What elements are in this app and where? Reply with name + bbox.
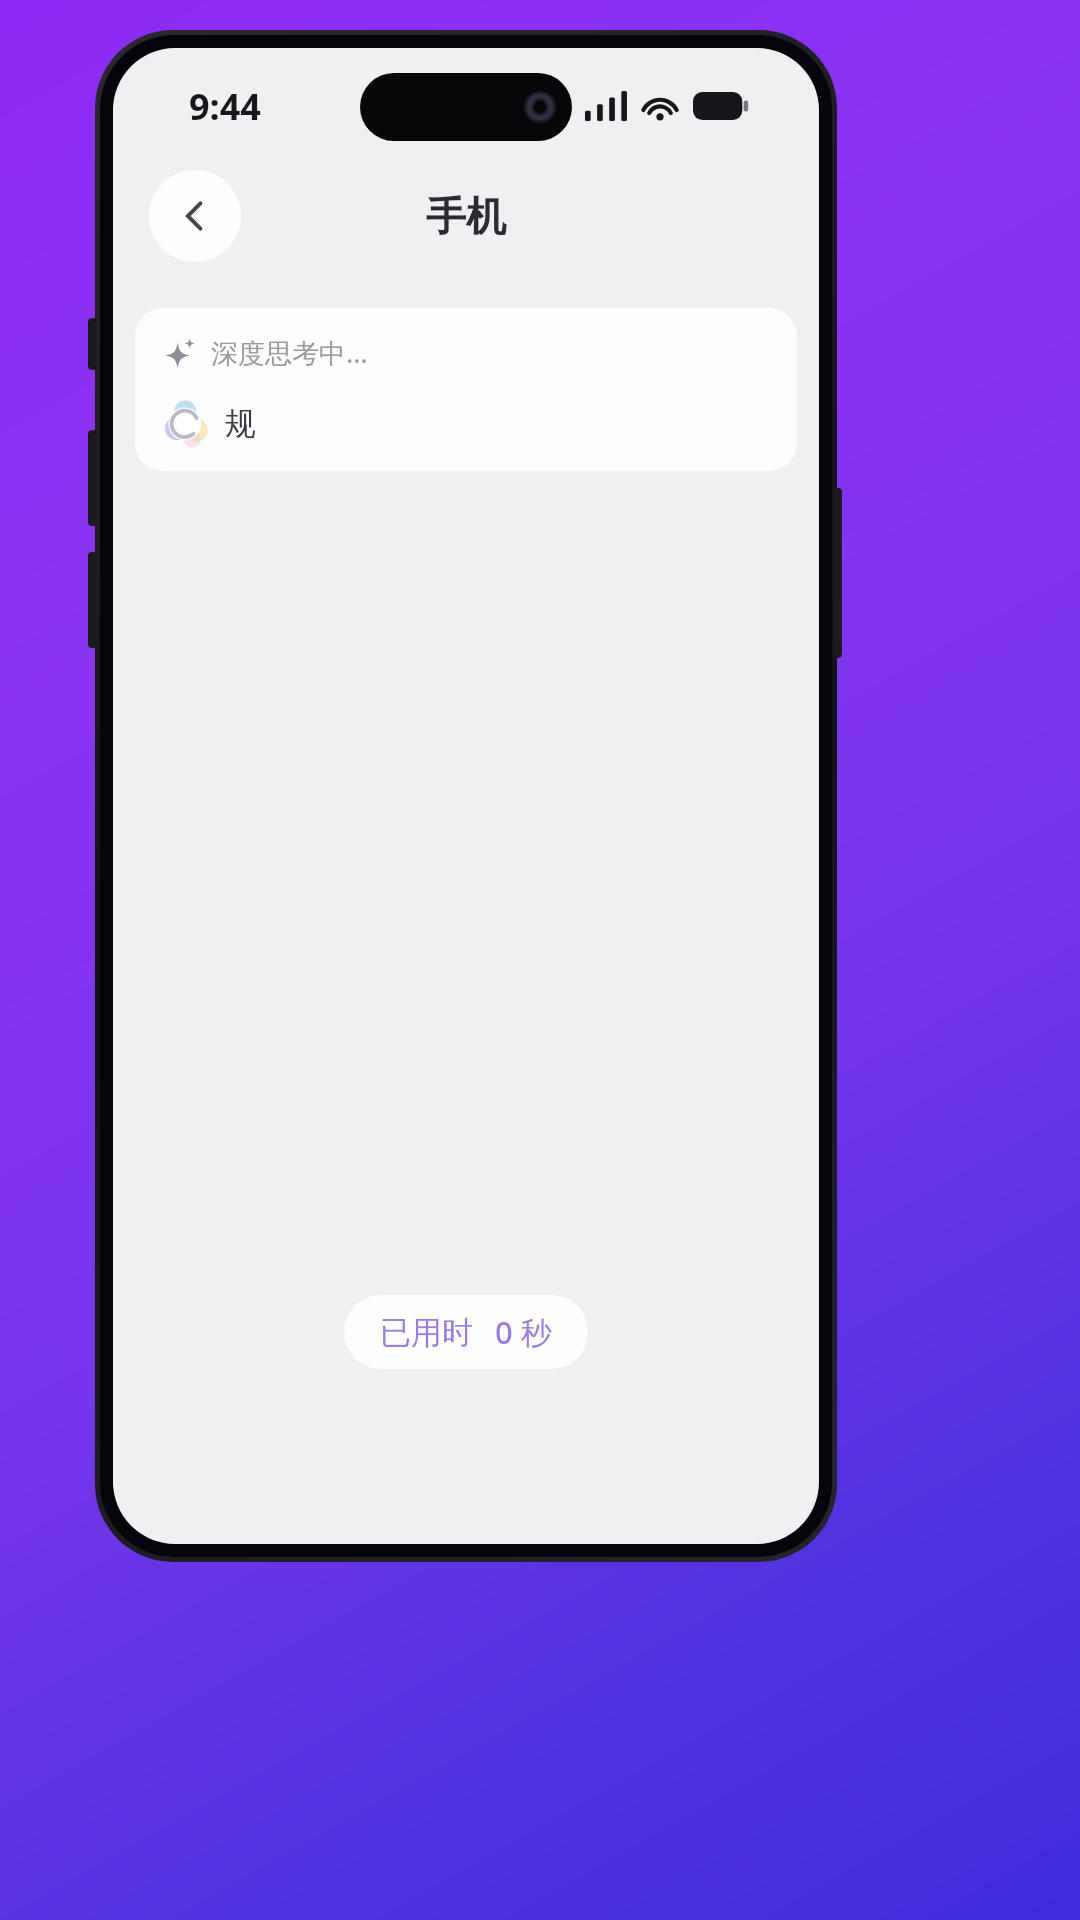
staticText: 已用时 [380, 1313, 473, 1352]
staticText: 深度思考中... [211, 334, 368, 371]
button[interactable]: 深度思考中... [135, 308, 797, 471]
button[interactable]: Back [149, 170, 241, 262]
button[interactable]: 已用时 [344, 1295, 588, 1369]
staticText: 规 [225, 404, 256, 443]
staticText: 9:44 [189, 82, 261, 131]
staticText: 手机 [426, 191, 506, 241]
staticText: 0 秒 [495, 1311, 552, 1353]
